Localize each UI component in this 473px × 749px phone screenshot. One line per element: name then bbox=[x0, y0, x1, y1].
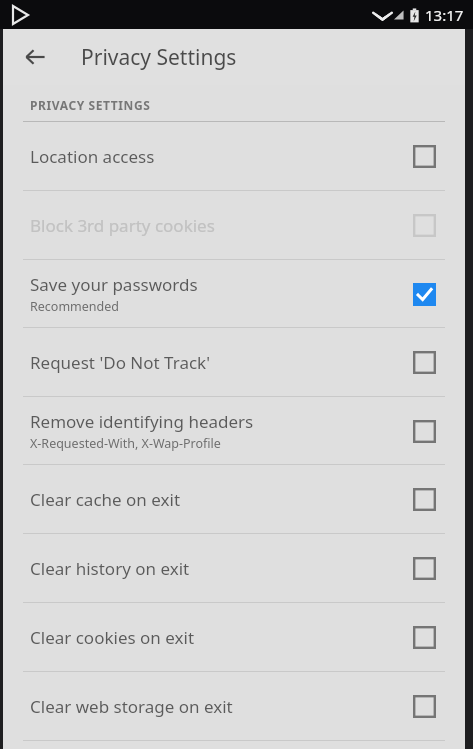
button[interactable]: Back bbox=[13, 35, 57, 79]
button[interactable]: Remove identifying headers bbox=[3, 397, 465, 464]
staticText: PRIVACY SETTINGS bbox=[30, 97, 151, 113]
staticText: Clear cookies on exit bbox=[30, 626, 195, 649]
staticText: Clear cache on exit bbox=[30, 488, 181, 511]
button[interactable]: Clear web storage on exit bbox=[3, 672, 465, 740]
staticText: Recommended bbox=[30, 298, 119, 315]
staticText: Request 'Do Not Track' bbox=[30, 351, 210, 374]
staticText: Clear web storage on exit bbox=[30, 695, 233, 718]
staticText: Clear history on exit bbox=[30, 557, 190, 580]
button[interactable]: Clear cookies on exit bbox=[3, 603, 465, 671]
button[interactable]: Clear cache on exit bbox=[3, 465, 465, 533]
button[interactable]: Clear history on exit bbox=[3, 534, 465, 602]
staticText: Remove identifying headers bbox=[30, 410, 254, 433]
button[interactable]: Block 3rd party cookies bbox=[3, 191, 465, 259]
staticText: Save your passwords bbox=[30, 273, 198, 296]
button[interactable]: Request 'Do Not Track' bbox=[3, 328, 465, 396]
staticText: Block 3rd party cookies bbox=[30, 214, 215, 237]
button[interactable]: Save your passwords bbox=[3, 260, 465, 327]
staticText: Privacy Settings bbox=[81, 43, 237, 72]
staticText: Location access bbox=[30, 145, 155, 168]
button[interactable]: Location access bbox=[3, 122, 465, 190]
staticText: X-Requested-With, X-Wap-Profile bbox=[30, 435, 221, 452]
staticText: 13:17 bbox=[425, 5, 464, 25]
